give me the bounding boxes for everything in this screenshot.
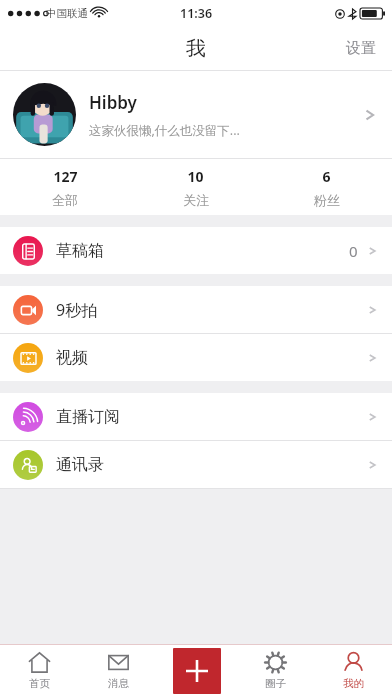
button[interactable]: 首页 (0, 645, 79, 696)
button[interactable]: 消息 (79, 645, 158, 696)
staticText: 全部 (52, 192, 78, 208)
staticText: 0 (349, 241, 358, 261)
staticText: 这家伙很懒,什么也没留下... (89, 122, 240, 139)
staticText: 9秒拍 (56, 299, 367, 321)
staticText: 6 (322, 167, 331, 186)
staticText: 粉丝 (314, 192, 340, 208)
button[interactable]: 视频 (0, 334, 392, 381)
staticText: 关注 (183, 192, 209, 208)
staticText: 10 (187, 167, 204, 186)
staticText: 我的 (343, 677, 364, 690)
staticText: 我 (186, 36, 206, 61)
button[interactable]: 我的 (314, 645, 392, 696)
staticText: 通讯录 (56, 455, 367, 475)
staticText: 设置 (346, 39, 376, 58)
button[interactable]: 设置 (330, 26, 392, 70)
staticText: 127 (53, 167, 78, 186)
button[interactable]: 草稿箱 (0, 227, 392, 274)
staticText: Hibby (89, 91, 137, 114)
staticText: 草稿箱 (56, 241, 349, 261)
button[interactable]: 127 (0, 159, 130, 215)
staticText: 中国联通 (46, 7, 88, 20)
button[interactable]: Hibby (0, 71, 392, 158)
staticText: 首页 (29, 677, 50, 690)
button[interactable]: 直播订阅 (0, 393, 392, 440)
button[interactable]: Create (173, 648, 221, 694)
staticText: 视频 (56, 348, 367, 368)
button[interactable]: 9秒拍 (0, 286, 392, 333)
button[interactable]: 通讯录 (0, 441, 392, 488)
staticText: 直播订阅 (56, 407, 367, 427)
button[interactable]: 10 (130, 159, 261, 215)
button[interactable]: 圈子 (236, 645, 314, 696)
staticText: 圈子 (265, 677, 286, 690)
button[interactable]: 6 (261, 159, 392, 215)
staticText: 11:36 (180, 5, 213, 22)
staticText: 消息 (108, 677, 129, 690)
